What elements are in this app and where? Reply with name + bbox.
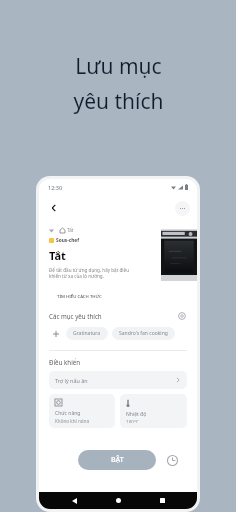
button[interactable]: TÌM HIỂU CÁCH THỨC (49, 289, 110, 302)
button[interactable]: More options (175, 201, 190, 216)
button[interactable]: Back (65, 492, 83, 509)
staticText: Tất (67, 227, 74, 233)
staticText: Chức năng (55, 410, 81, 417)
staticText: Gratinatura (73, 330, 101, 337)
button[interactable]: Timer (162, 450, 182, 470)
staticText: Không khí nóng (55, 418, 90, 423)
button[interactable]: Gratinatura (66, 327, 108, 340)
staticText: Nhiệt độ (126, 411, 147, 418)
button[interactable]: Settings (177, 311, 187, 321)
button[interactable]: Back (46, 200, 62, 216)
staticText: Sous-chef (56, 237, 80, 244)
staticText: yêu thích (73, 87, 164, 116)
staticText: Sandro's fan cooking (119, 330, 168, 337)
button[interactable]: BẬT (78, 450, 156, 470)
staticText: Tắt (49, 248, 66, 263)
staticText: Điều khiển (49, 358, 81, 366)
button[interactable]: Trợ lý nấu ăn (49, 371, 187, 389)
staticText: 180°C (126, 419, 139, 423)
staticText: Lưu mục (75, 52, 162, 81)
staticText: Các mục yêu thích (49, 312, 102, 320)
button[interactable]: Nhiệt độ (120, 394, 187, 428)
button[interactable]: Chức năng (49, 394, 115, 428)
staticText: BẬT (111, 455, 124, 465)
staticText: Để tắt đầu từ ứng dụng, hãy bật điều khi… (49, 267, 129, 280)
staticText: 12:30 (48, 184, 63, 191)
button[interactable]: Home (109, 492, 127, 509)
staticText: Trợ lý nấu ăn (55, 377, 88, 384)
staticText: TÌM HIỂU CÁCH THỨC (57, 293, 102, 299)
button[interactable]: Sandro's fan cooking (112, 327, 175, 340)
button[interactable]: Recent apps (153, 492, 171, 509)
button[interactable]: Add favourite (49, 327, 62, 340)
